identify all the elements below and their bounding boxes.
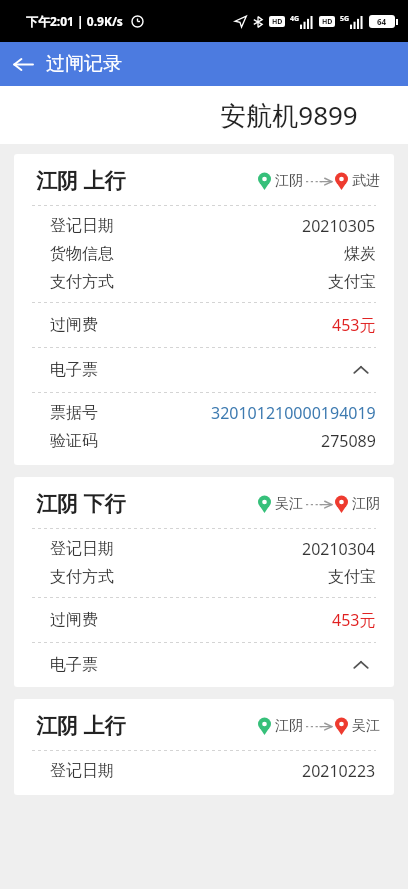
staticText: HD [322, 17, 333, 27]
staticText: 453元 [332, 314, 376, 336]
staticText: 吴江 [352, 717, 380, 735]
staticText: 验证码 [50, 431, 98, 451]
staticText: HD [272, 17, 283, 27]
staticText: 支付宝 [328, 567, 376, 587]
staticText: 275089 [321, 430, 376, 452]
button[interactable]: 江阴 上行 [14, 699, 394, 795]
staticText: 4G [290, 14, 300, 24]
staticText: 支付方式 [50, 567, 114, 587]
staticText: 20210305 [302, 215, 376, 237]
staticText: 吴江 [275, 495, 303, 513]
staticText: 320101210000194019 [211, 402, 376, 424]
other: Collapse [350, 654, 372, 676]
staticText: 登记日期 [50, 761, 114, 781]
staticText: 支付宝 [328, 272, 376, 292]
other: Collapse [350, 359, 372, 381]
staticText: 64 [377, 16, 387, 27]
staticText: 货物信息 [50, 244, 114, 264]
staticText: 20210304 [302, 538, 376, 560]
staticText: 江阴 上行 [36, 166, 126, 195]
staticText: 江阴 [275, 717, 303, 735]
staticText: 5G [340, 14, 350, 24]
staticText: 下午2:01 | 0.9K/s [26, 13, 123, 29]
button[interactable]: 电子票 [50, 643, 372, 687]
staticText: 过闸记录 [46, 52, 122, 76]
staticText: 煤炭 [344, 244, 376, 264]
button[interactable]: 江阴 上行 [14, 154, 394, 465]
staticText: 登记日期 [50, 216, 114, 236]
staticText: 江阴 上行 [36, 711, 126, 740]
button[interactable]: 江阴 下行 [14, 477, 394, 687]
staticText: 安航机9899 [220, 97, 358, 133]
staticText: 江阴 [275, 172, 303, 190]
staticText: 20210223 [302, 760, 376, 782]
staticText: 过闸费 [50, 610, 98, 630]
staticText: 支付方式 [50, 272, 114, 292]
staticText: 票据号 [50, 403, 98, 423]
staticText: 武进 [352, 172, 380, 190]
staticText: 江阴 下行 [36, 489, 126, 518]
staticText: 江阴 [352, 495, 380, 513]
staticText: 453元 [332, 609, 376, 631]
button[interactable]: 电子票 [50, 348, 372, 392]
staticText: 电子票 [50, 360, 98, 380]
staticText: 登记日期 [50, 539, 114, 559]
button[interactable]: Back [0, 42, 46, 86]
staticText: 过闸费 [50, 315, 98, 335]
staticText: 电子票 [50, 655, 98, 675]
